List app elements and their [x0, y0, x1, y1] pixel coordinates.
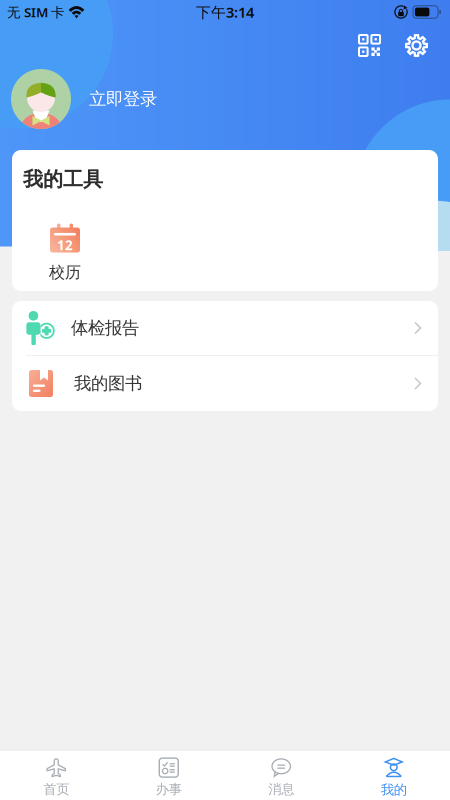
staticText: 12: [57, 236, 73, 254]
staticText: 我的: [381, 782, 407, 798]
button[interactable]: 我的: [337, 751, 450, 800]
button[interactable]: 办事: [112, 751, 225, 799]
button[interactable]: 立即登录: [0, 61, 450, 129]
button[interactable]: 我的图书: [12, 356, 438, 411]
staticText: 下午3:14: [196, 2, 254, 22]
staticText: 体检报告: [71, 317, 139, 339]
button[interactable]: 12: [12, 192, 99, 282]
staticText: 我的图书: [74, 373, 142, 394]
button[interactable]: 消息: [225, 751, 337, 799]
staticText: 无 SIM 卡: [7, 3, 64, 21]
staticText: 我的工具: [23, 167, 103, 192]
button[interactable]: 首页: [0, 751, 112, 799]
staticText: 首页: [43, 781, 69, 797]
staticText: 消息: [268, 781, 294, 797]
button[interactable]: 体检报告: [12, 301, 438, 355]
button[interactable]: Settings: [401, 30, 432, 61]
staticText: 校历: [49, 263, 81, 282]
button[interactable]: Scan QR code: [354, 30, 385, 61]
staticText: 办事: [156, 781, 182, 797]
staticText: 立即登录: [89, 88, 157, 110]
